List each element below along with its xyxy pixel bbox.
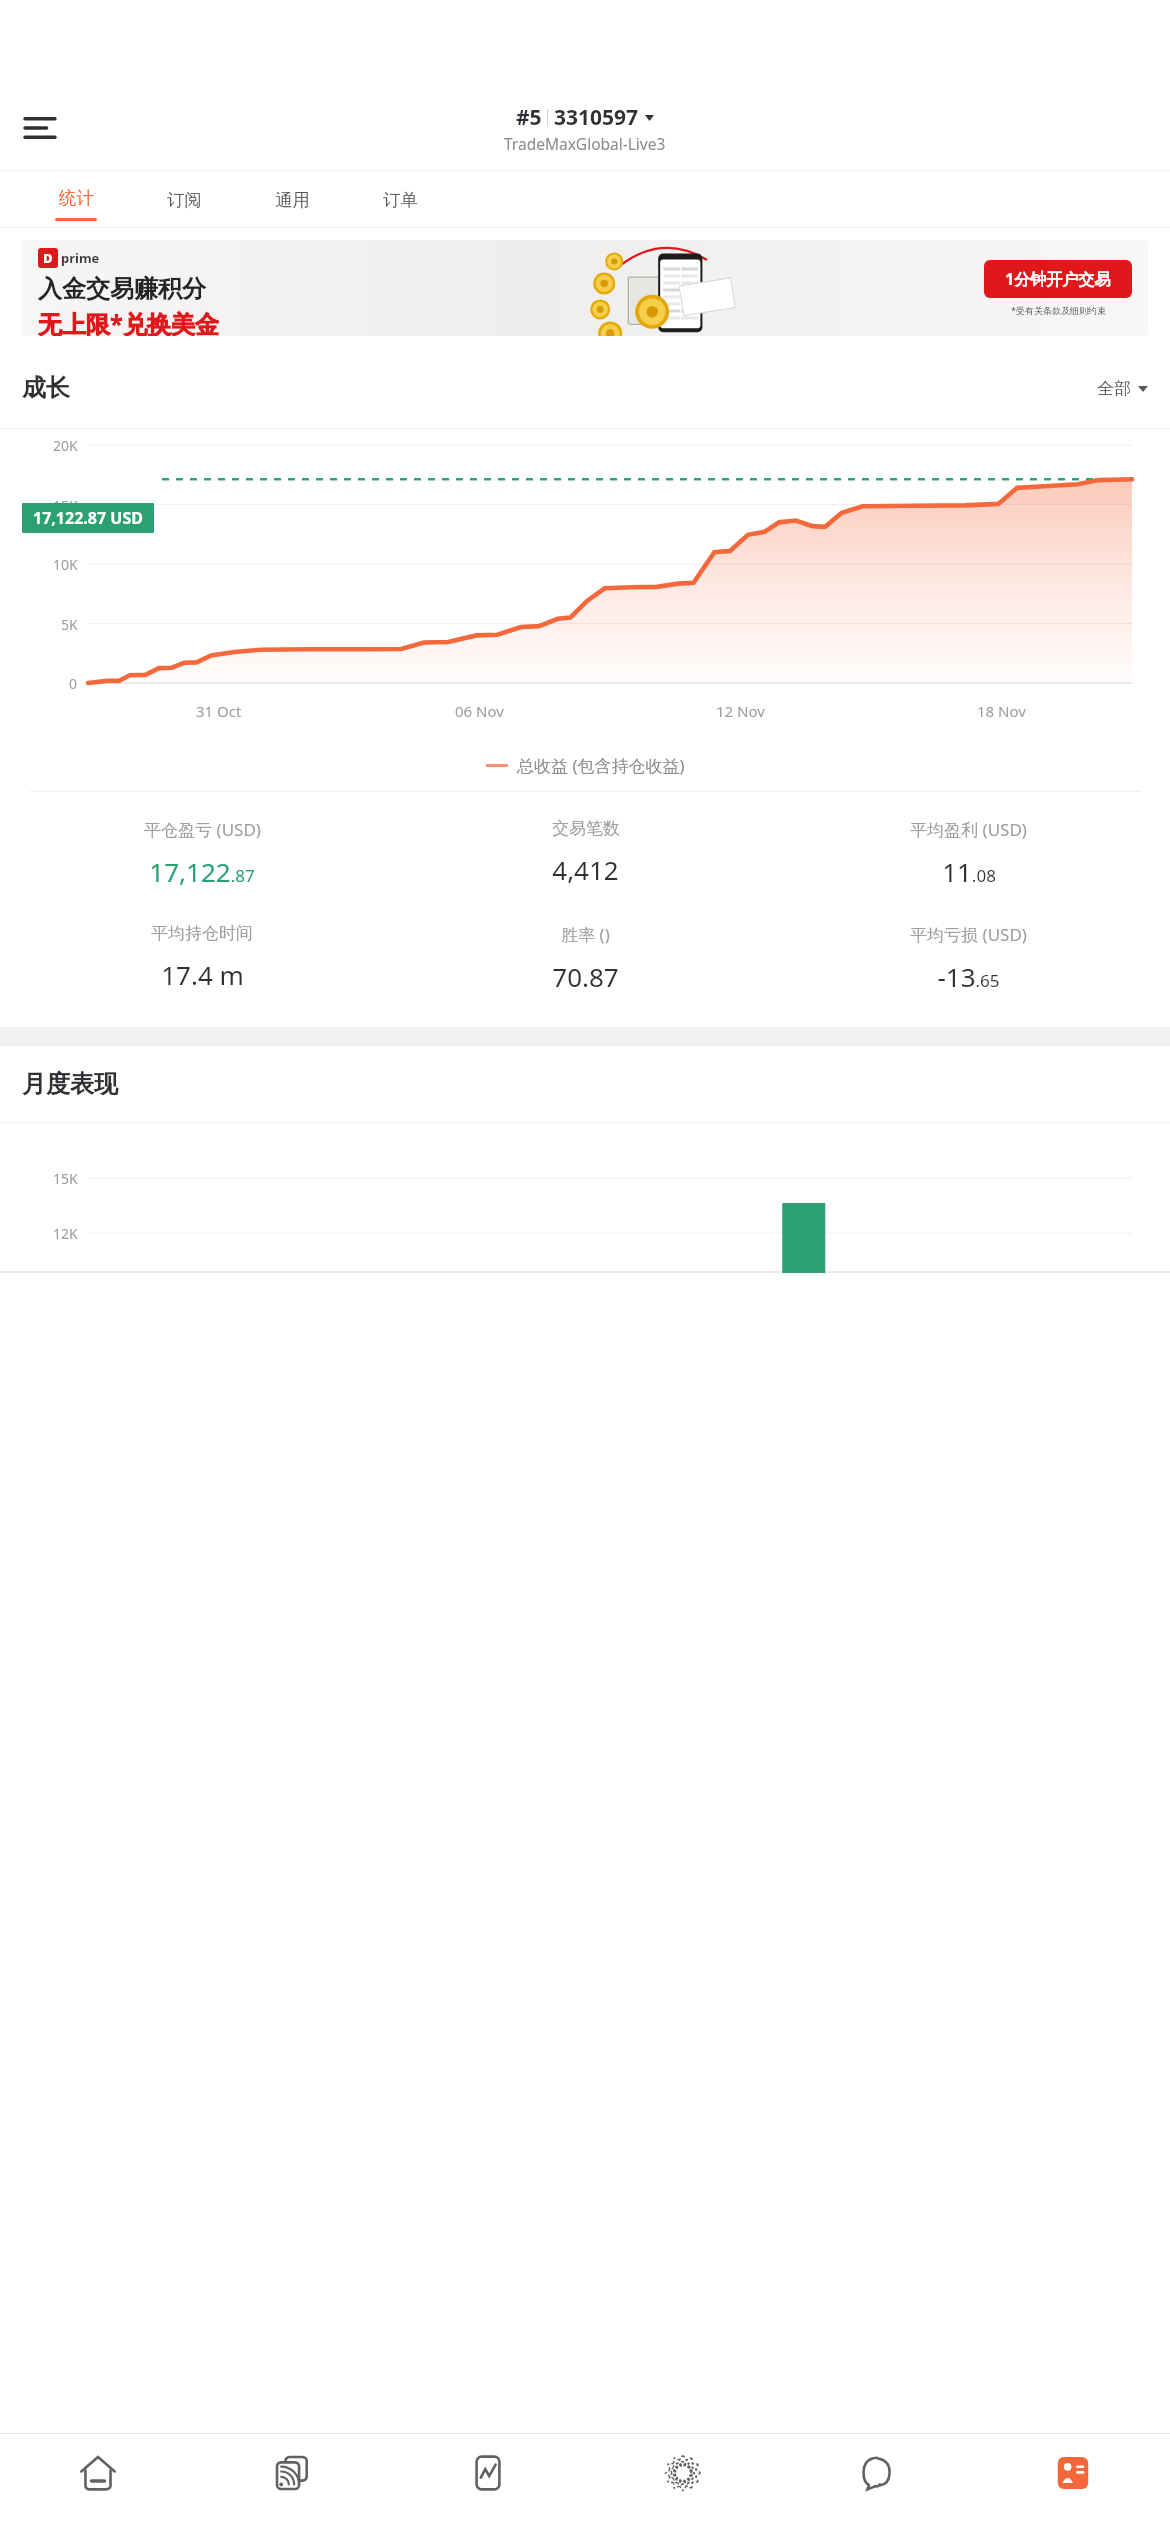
button[interactable]: 胜率 () [394, 923, 777, 994]
button[interactable]: Chat [780, 2434, 975, 2532]
staticText: #5 [516, 103, 542, 132]
button[interactable]: 1分钟开户交易 [984, 260, 1132, 298]
button[interactable]: 统计 [22, 171, 130, 227]
staticText: 5K [61, 615, 78, 634]
button[interactable]: Profile [975, 2434, 1170, 2532]
staticText: 31 Oct [196, 701, 242, 721]
button[interactable]: 平均持仓时间 [10, 923, 394, 992]
staticText: 06 Nov [455, 701, 504, 721]
staticText: 15K [53, 496, 78, 515]
staticText: 10K [53, 555, 78, 574]
staticText: prime [61, 249, 100, 267]
staticText: 总收益 (包含持仓收益) [517, 754, 685, 777]
button[interactable]: Home [0, 2434, 195, 2532]
staticText: 17.4 m [161, 957, 244, 992]
staticText: 订单 [383, 189, 418, 211]
staticText: 平仓盈亏 (USD) [144, 818, 261, 841]
staticText: 入金交易赚积分 [38, 274, 206, 304]
button[interactable]: 平仓盈亏 (USD) [10, 818, 394, 889]
staticText: 17,122.87 USD [33, 507, 143, 529]
button[interactable]: 全部 [1097, 378, 1148, 399]
button[interactable]: 平均盈利 (USD) [777, 818, 1160, 889]
staticText: 无上限*兑换美金 [38, 307, 219, 336]
staticText: 胜率 () [561, 923, 610, 946]
staticText: 18 Nov [977, 701, 1026, 721]
staticText: 交易笔数 [552, 818, 620, 839]
button[interactable]: 订单 [346, 171, 454, 227]
staticText: 平均亏损 (USD) [910, 923, 1027, 946]
staticText: 20K [53, 436, 78, 455]
button[interactable]: Community [585, 2434, 780, 2532]
staticText: D [43, 249, 53, 267]
staticText: 4,412 [552, 852, 619, 887]
staticText: 12 Nov [716, 701, 765, 721]
staticText: 成长 [22, 373, 70, 403]
staticText: 15K [53, 1169, 78, 1188]
button[interactable]: #5 [504, 103, 666, 154]
button[interactable]: 通用 [238, 171, 346, 227]
button[interactable]: Menu [12, 100, 68, 156]
staticText: 1分钟开户交易 [1005, 268, 1111, 290]
staticText: 订阅 [167, 189, 202, 211]
staticText: -13.65 [937, 959, 1000, 994]
staticText: 通用 [275, 189, 310, 211]
button[interactable]: 平均亏损 (USD) [777, 923, 1160, 994]
button[interactable]: Quotes [390, 2434, 585, 2532]
staticText: 11.08 [942, 854, 996, 889]
staticText: 17,122.87 [149, 854, 255, 889]
staticText: 平均盈利 (USD) [910, 818, 1027, 841]
staticText: *受有关条款及细则约束 [1011, 304, 1106, 316]
staticText: 统计 [59, 187, 94, 209]
staticText: 70.87 [552, 959, 619, 994]
button[interactable]: Signals [195, 2434, 390, 2532]
staticText: 12K [53, 1224, 78, 1243]
button[interactable]: D [22, 240, 1148, 336]
staticText: TradeMaxGlobal-Live3 [504, 133, 666, 154]
staticText: 0 [69, 674, 78, 693]
staticText: 月度表现 [22, 1069, 118, 1099]
staticText: 平均持仓时间 [151, 923, 253, 944]
button[interactable]: 订阅 [130, 171, 238, 227]
staticText: 全部 [1097, 378, 1131, 399]
button[interactable]: 交易笔数 [394, 818, 777, 887]
staticText: 3310597 [554, 103, 639, 132]
